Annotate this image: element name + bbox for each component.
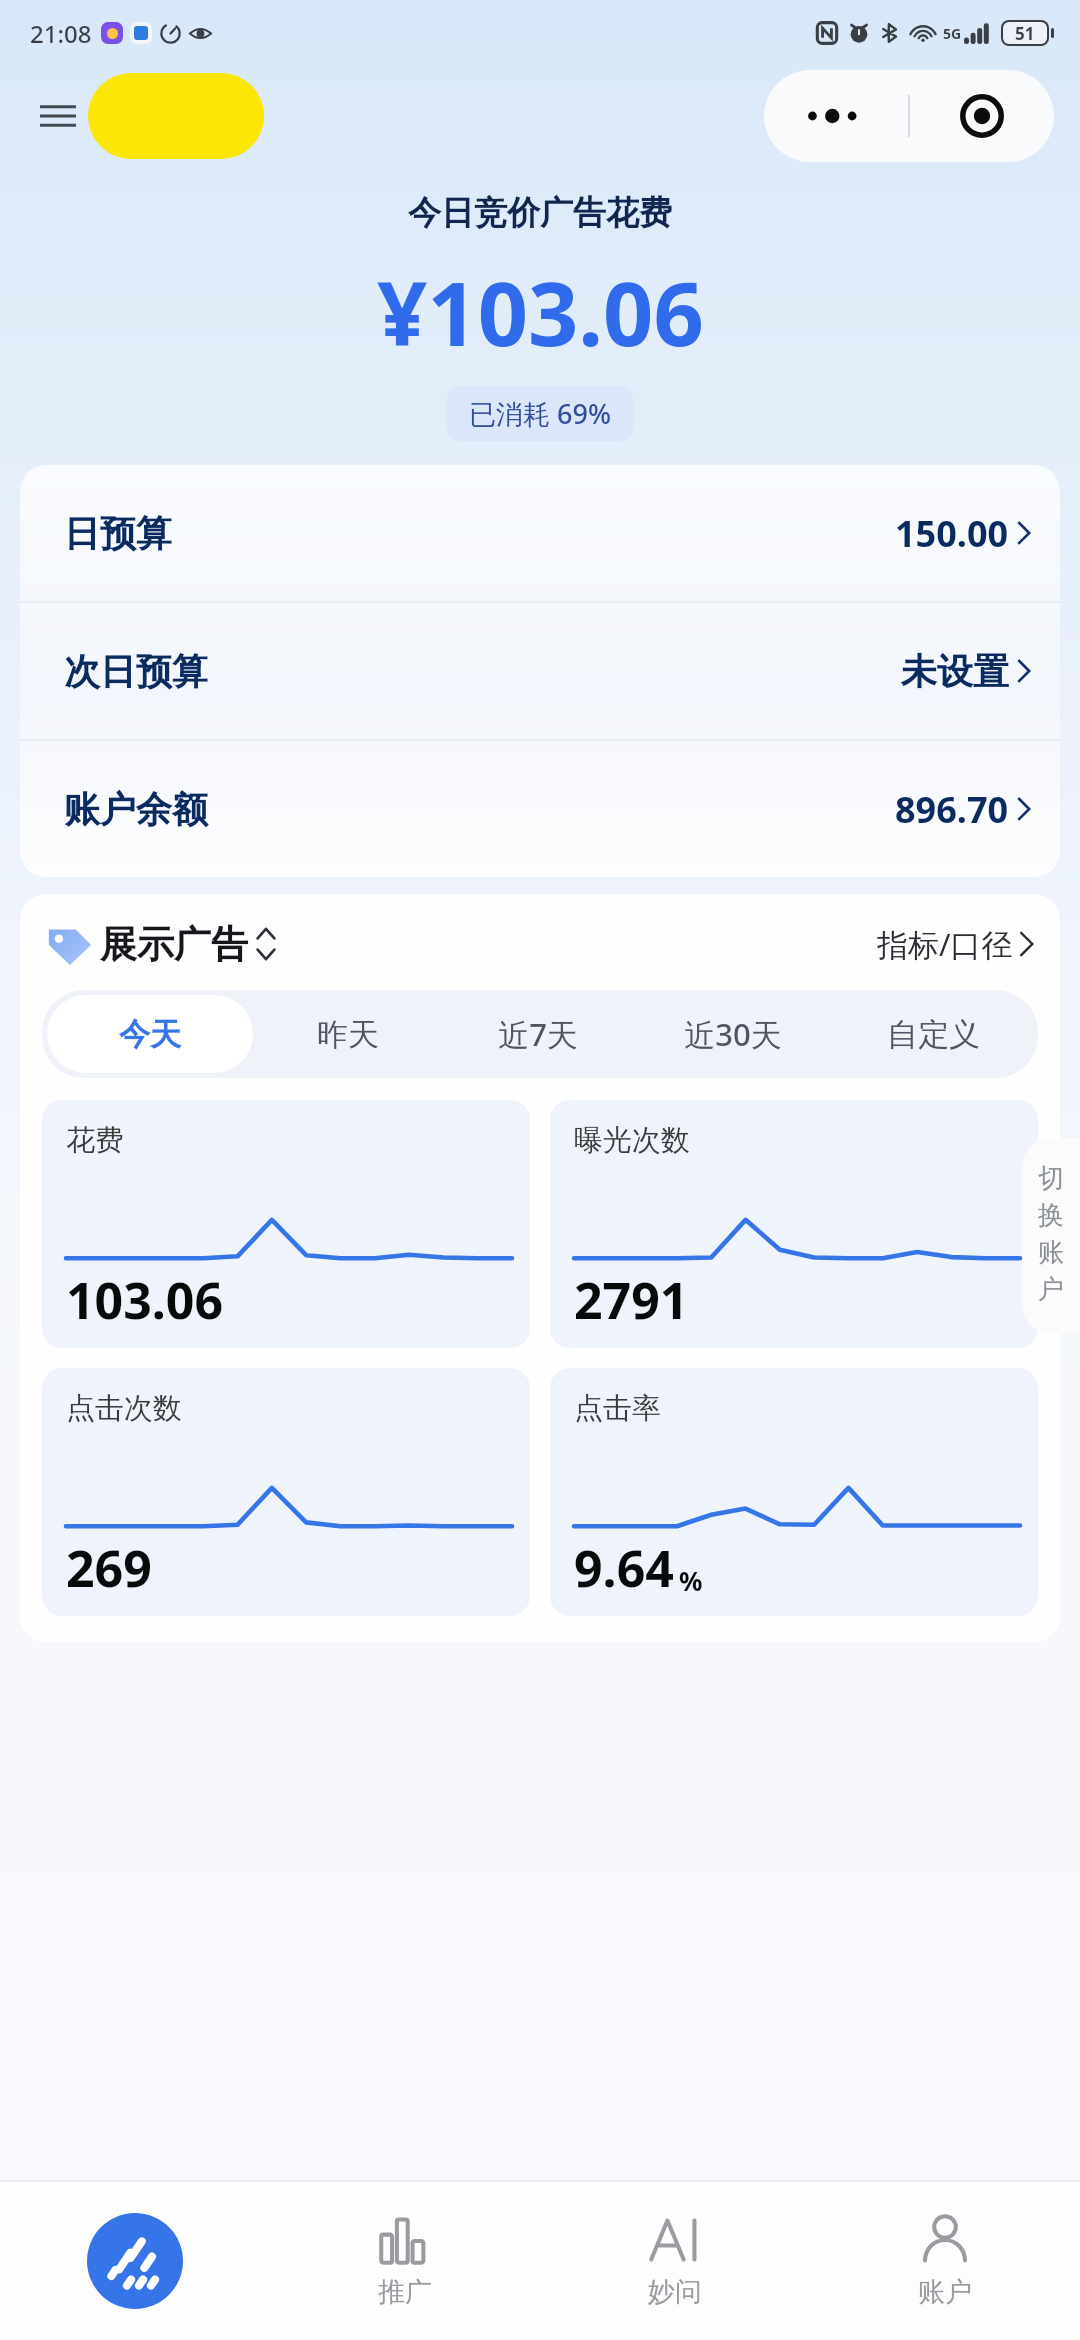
button[interactable]: 曝光次数 — [550, 1100, 1038, 1348]
button[interactable]: 日预算 — [20, 465, 1060, 601]
button[interactable]: More options — [764, 70, 908, 162]
button[interactable]: Menu — [34, 92, 82, 140]
button[interactable]: 账户 — [810, 2182, 1080, 2340]
button[interactable]: 指标/口径 — [877, 923, 1034, 965]
button[interactable] — [88, 73, 264, 159]
staticText: 账 — [1038, 1236, 1064, 1269]
button[interactable]: 昨天 — [253, 995, 443, 1073]
staticText: 51 — [1015, 22, 1035, 44]
button[interactable]: 展示广告 — [46, 920, 276, 968]
staticText: ¥103.06 — [377, 252, 704, 372]
staticText: % — [679, 1563, 703, 1598]
button[interactable]: 推广 — [270, 2182, 540, 2340]
button[interactable]: Home — [0, 2182, 270, 2340]
staticText: 269 — [66, 1534, 152, 1602]
button[interactable]: Close — [910, 70, 1054, 162]
staticText: 指标/口径 — [877, 923, 1013, 965]
button[interactable]: 切 — [1022, 1138, 1080, 1334]
button[interactable]: 自定义 — [833, 995, 1033, 1073]
staticText: 5G — [943, 24, 962, 43]
staticText: 未设置 — [901, 649, 1009, 694]
staticText: 今日竞价广告花费 — [408, 192, 672, 234]
staticText: 2791 — [574, 1266, 689, 1334]
staticText: 点击次数 — [66, 1390, 182, 1427]
button[interactable]: 今天 — [47, 995, 253, 1073]
button[interactable]: 近7天 — [443, 995, 633, 1073]
staticText: 近7天 — [498, 1013, 578, 1055]
staticText: 账户余额 — [64, 787, 208, 832]
staticText: 日预算 — [64, 511, 172, 556]
staticText: 妙问 — [648, 2275, 702, 2309]
button[interactable]: 点击率 — [550, 1368, 1038, 1616]
staticText: 150.00 — [895, 509, 1009, 558]
staticText: 今天 — [119, 1015, 181, 1054]
button[interactable]: 点击次数 — [42, 1368, 530, 1616]
staticText: 21:08 — [30, 17, 92, 50]
button[interactable]: 已消耗 69% — [447, 386, 633, 441]
staticText: 展示广告 — [100, 921, 248, 968]
staticText: 户 — [1038, 1273, 1064, 1306]
staticText: 近30天 — [684, 1013, 782, 1055]
staticText: 已消耗 69% — [469, 395, 611, 432]
staticText: 次日预算 — [64, 649, 208, 694]
staticText: 推广 — [378, 2275, 432, 2309]
staticText: 896.70 — [895, 785, 1009, 834]
staticText: 9.64 — [574, 1534, 674, 1602]
button[interactable]: 近30天 — [633, 995, 833, 1073]
staticText: 花费 — [66, 1122, 124, 1159]
staticText: 切 — [1038, 1162, 1064, 1195]
staticText: 昨天 — [317, 1015, 379, 1054]
button[interactable]: 次日预算 — [20, 603, 1060, 739]
button[interactable]: 账户余额 — [20, 741, 1060, 877]
staticText: 自定义 — [887, 1015, 980, 1054]
staticText: 点击率 — [574, 1390, 661, 1427]
staticText: 103.06 — [66, 1266, 224, 1334]
staticText: 曝光次数 — [574, 1122, 690, 1159]
button[interactable]: 花费 — [42, 1100, 530, 1348]
button[interactable]: 妙问 — [540, 2182, 810, 2340]
staticText: 账户 — [918, 2275, 972, 2309]
staticText: 换 — [1038, 1199, 1064, 1232]
